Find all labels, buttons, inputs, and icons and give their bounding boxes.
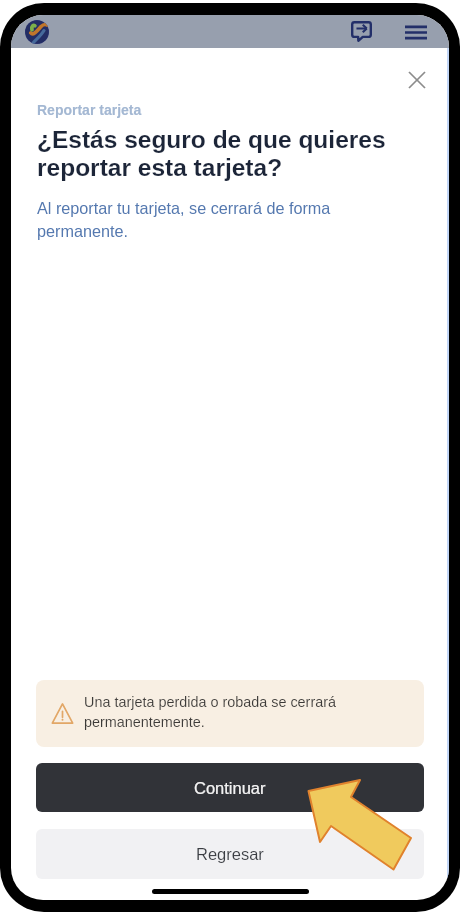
staticText: Una tarjeta perdida o robada se cerrará … [84,694,346,730]
staticText: Reportar tarjeta [37,102,142,118]
button[interactable]: Menu [402,18,429,45]
button[interactable]: Browser home [23,18,51,46]
staticText: Continuar [194,779,266,797]
button[interactable]: Close [403,66,431,94]
staticText: Regresar [196,845,264,863]
staticText: ¿Estás seguro de que quieres reportar es… [37,126,387,181]
button[interactable]: Continuar [36,763,424,812]
staticText: Al reportar tu tarjeta, se cerrará de fo… [37,199,342,240]
button[interactable]: Regresar [36,829,424,879]
button[interactable]: Messages [348,18,375,45]
